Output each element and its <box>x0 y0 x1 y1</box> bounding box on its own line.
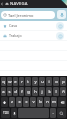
staticText: Trabajo <box>9 33 22 38</box>
button[interactable]: z <box>9 97 15 107</box>
staticText: j <box>41 89 43 95</box>
button[interactable]: c <box>23 97 29 107</box>
staticText: s <box>8 89 11 95</box>
button[interactable]: r <box>19 77 24 86</box>
staticText: l <box>55 89 57 95</box>
button[interactable]: x <box>16 97 22 107</box>
staticText: m <box>52 99 56 105</box>
button[interactable]: o <box>53 77 59 86</box>
staticText: k <box>48 89 51 95</box>
button[interactable]: Tael Jeronimo <box>1 11 55 19</box>
button[interactable]: . <box>50 108 56 118</box>
staticText: p <box>62 79 65 85</box>
button[interactable]: v <box>30 97 36 107</box>
staticText: x <box>18 99 21 105</box>
button[interactable]: s <box>7 87 12 96</box>
button[interactable]: Voice search <box>57 10 66 19</box>
staticText: ?123 <box>3 111 9 115</box>
button[interactable]: w <box>7 77 12 86</box>
staticText: i <box>48 79 50 85</box>
button[interactable]: h <box>32 87 38 96</box>
staticText: n <box>46 99 49 105</box>
button[interactable]: j <box>39 87 45 96</box>
staticText: . <box>52 110 54 116</box>
staticText: f <box>21 89 23 95</box>
button[interactable]: Casa <box>0 21 67 30</box>
staticText: b <box>39 99 42 105</box>
button[interactable]: Back <box>0 2 4 6</box>
staticText: d <box>14 89 17 95</box>
button[interactable]: l <box>53 87 59 96</box>
button[interactable]: ñ <box>60 87 66 96</box>
button[interactable]: g <box>25 87 31 96</box>
staticText: e <box>14 79 17 85</box>
button[interactable]: k <box>46 87 52 96</box>
staticText: u <box>41 79 44 85</box>
button[interactable]: Shift <box>1 97 8 107</box>
staticText: q <box>2 79 5 85</box>
staticText: t <box>27 79 29 85</box>
button[interactable]: f <box>19 87 24 96</box>
button[interactable]: m <box>51 97 57 107</box>
staticText: r <box>21 79 23 85</box>
staticText: c <box>25 99 28 105</box>
staticText: Casa <box>9 23 18 28</box>
staticText: y <box>34 79 37 85</box>
button[interactable]: Voice input <box>11 108 17 118</box>
button[interactable]: More options <box>56 32 64 40</box>
button[interactable]: q <box>1 77 6 86</box>
staticText: a <box>2 89 5 95</box>
button[interactable]: y <box>32 77 38 86</box>
button[interactable]: p <box>60 77 66 86</box>
button[interactable]: Backspace <box>58 97 66 107</box>
staticText: NAVEGA <box>10 1 28 7</box>
button[interactable]: e <box>13 77 18 86</box>
button[interactable]: n <box>44 97 50 107</box>
button[interactable]: Search <box>57 108 66 118</box>
button[interactable]: Trabajo <box>0 31 67 40</box>
button[interactable]: b <box>37 97 43 107</box>
button[interactable]: More options <box>56 22 64 30</box>
button[interactable]: d <box>13 87 18 96</box>
button[interactable]: ?123 <box>1 108 10 118</box>
staticText: v <box>32 99 35 105</box>
button[interactable]: u <box>39 77 45 86</box>
staticText: ñ <box>62 89 65 95</box>
button[interactable]: t <box>25 77 31 86</box>
staticText: w <box>8 79 12 85</box>
staticText: z <box>11 99 13 105</box>
button[interactable]: a <box>1 87 6 96</box>
button[interactable]: i <box>46 77 52 86</box>
staticText: o <box>55 79 58 85</box>
staticText: Tael Jeronimo <box>8 13 34 18</box>
staticText: h <box>34 89 37 95</box>
staticText: g <box>27 89 30 95</box>
